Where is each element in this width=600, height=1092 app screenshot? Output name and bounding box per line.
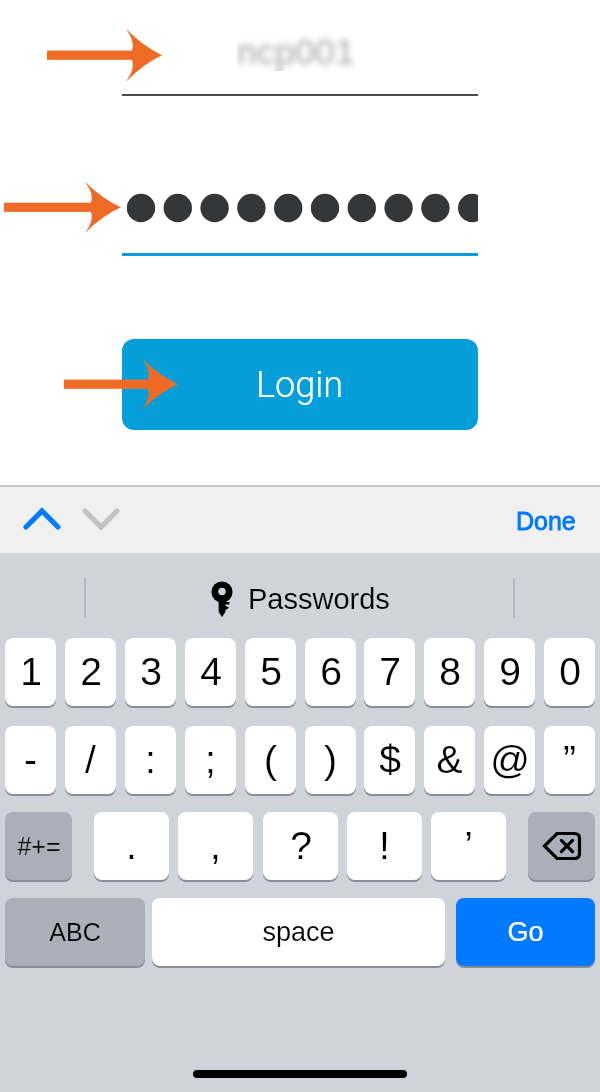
button[interactable]: & (424, 726, 475, 794)
button[interactable]: - (5, 726, 56, 794)
button[interactable]: 6 (305, 638, 356, 706)
staticText: #+= (17, 832, 61, 860)
button[interactable]: 2 (65, 638, 116, 706)
staticText: Login (256, 364, 344, 406)
button[interactable]: Go (456, 898, 595, 966)
button[interactable]: , (178, 812, 253, 880)
button[interactable]: $ (364, 726, 415, 794)
staticText: 7 (379, 650, 401, 694)
staticText: - (24, 738, 37, 782)
staticText: / (85, 738, 96, 782)
button[interactable]: #+= (5, 812, 72, 880)
button[interactable]: 8 (424, 638, 475, 706)
staticText: ; (205, 738, 216, 782)
button[interactable]: @ (484, 726, 535, 794)
staticText: , (210, 824, 221, 868)
button[interactable]: 4 (185, 638, 236, 706)
staticText: ’ (464, 824, 473, 868)
button[interactable]: Passwords (0, 573, 600, 625)
staticText: & (436, 738, 463, 782)
button[interactable]: Next field (67, 490, 135, 548)
staticText: 3 (140, 650, 162, 694)
button[interactable]: ( (245, 726, 296, 794)
button[interactable]: ABC (5, 898, 145, 966)
button[interactable]: Backspace (528, 812, 595, 880)
staticText: ? (290, 824, 312, 868)
staticText: ( (264, 738, 277, 782)
staticText: 9 (499, 650, 521, 694)
staticText: Passwords (248, 583, 390, 615)
button[interactable]: 7 (364, 638, 415, 706)
staticText: 1 (20, 650, 42, 694)
staticText: 8 (439, 650, 461, 694)
button[interactable]: ! (347, 812, 422, 880)
button[interactable]: Login (122, 339, 478, 430)
staticText: 2 (80, 650, 102, 694)
button[interactable]: ’ (431, 812, 506, 880)
staticText: 5 (260, 650, 282, 694)
button[interactable]: 1 (5, 638, 56, 706)
button[interactable]: Done (503, 495, 589, 547)
button[interactable]: : (125, 726, 176, 794)
staticText: ” (563, 738, 576, 782)
button[interactable]: ; (185, 726, 236, 794)
button[interactable]: ) (305, 726, 356, 794)
button[interactable]: 9 (484, 638, 535, 706)
staticText: ! (379, 824, 390, 868)
staticText: Done (516, 507, 576, 535)
staticText: 6 (320, 650, 342, 694)
button[interactable]: . (94, 812, 169, 880)
staticText: ABC (49, 918, 101, 946)
button[interactable]: 3 (125, 638, 176, 706)
staticText: 4 (200, 650, 222, 694)
staticText: space (262, 917, 335, 947)
button[interactable]: ” (544, 726, 595, 794)
button[interactable]: space (152, 898, 445, 966)
button[interactable]: 5 (245, 638, 296, 706)
staticText: $ (379, 738, 401, 782)
staticText: @ (490, 738, 530, 782)
staticText: : (145, 738, 156, 782)
button[interactable]: Previous field (8, 490, 76, 548)
button[interactable]: / (65, 726, 116, 794)
staticText: 0 (559, 650, 581, 694)
button[interactable]: 0 (544, 638, 595, 706)
staticText: ncp001 (237, 32, 356, 71)
staticText: ) (324, 738, 337, 782)
staticText: . (126, 824, 137, 868)
button[interactable]: ? (263, 812, 338, 880)
staticText: Go (507, 917, 544, 947)
